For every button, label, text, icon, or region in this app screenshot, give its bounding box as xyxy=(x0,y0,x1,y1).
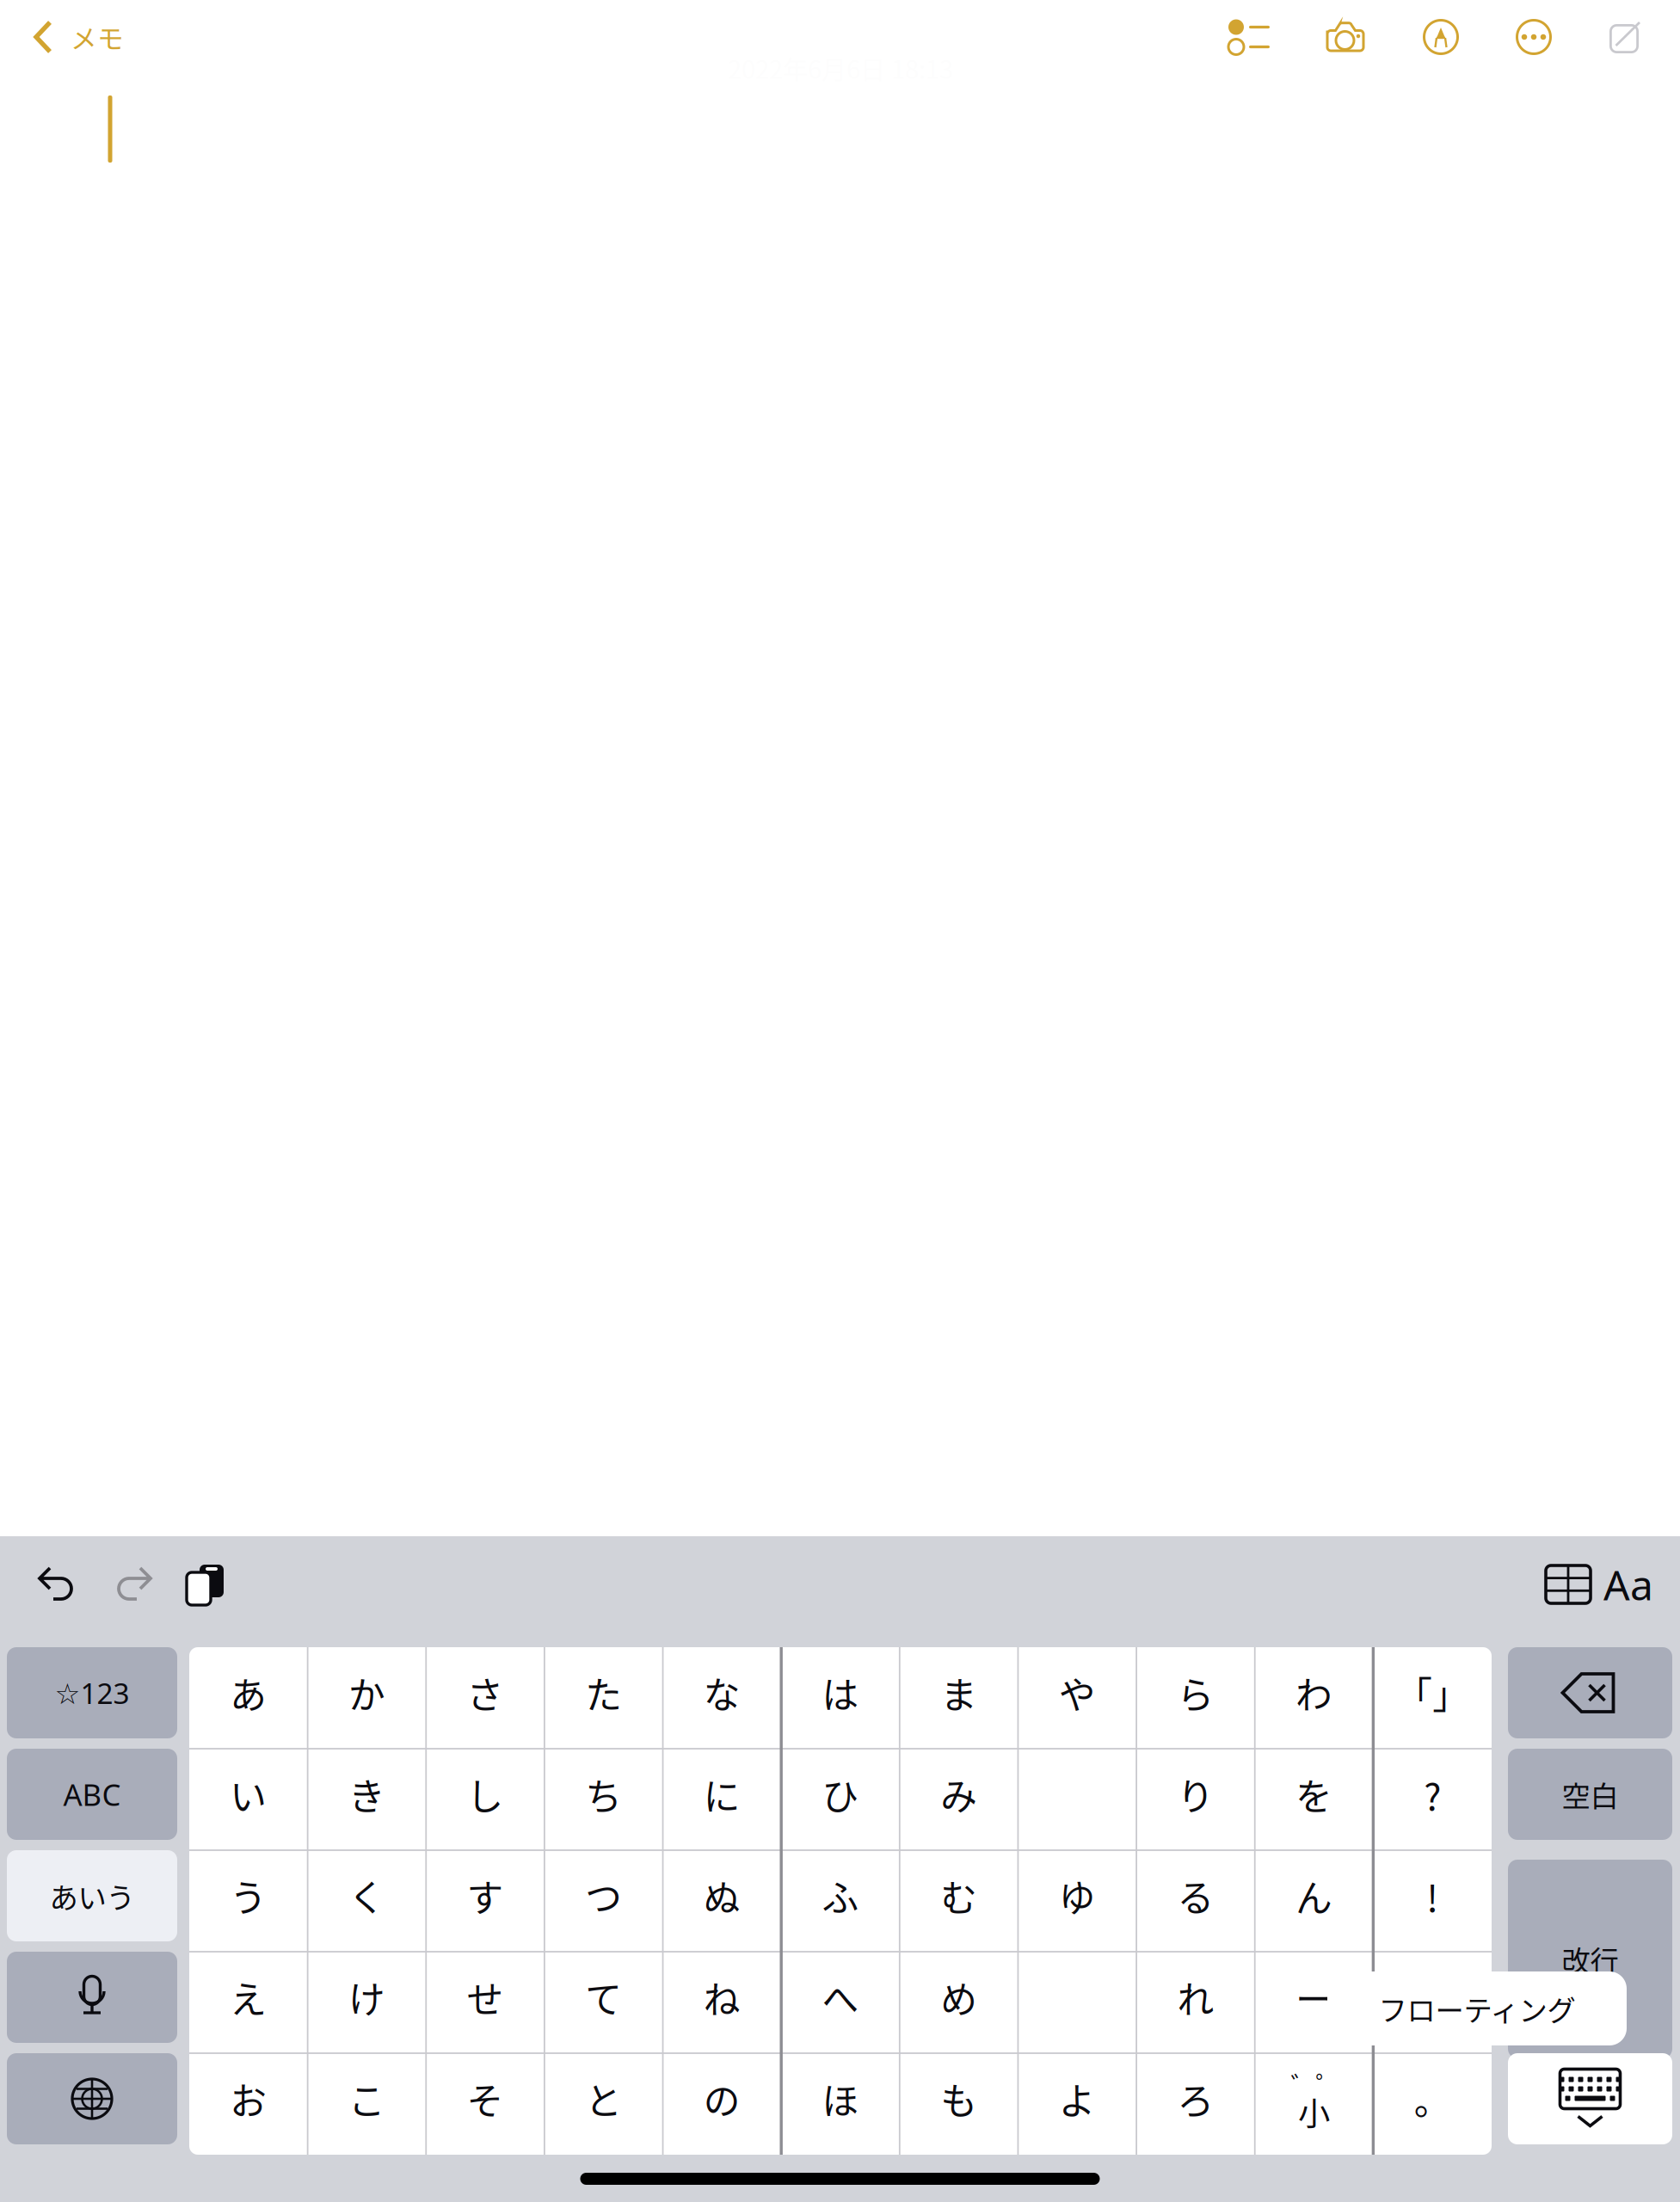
button[interactable]: わ xyxy=(1255,1647,1373,1749)
button[interactable]: ひ xyxy=(781,1749,900,1850)
button[interactable]: Text format xyxy=(1605,1561,1652,1608)
button[interactable]: れ xyxy=(1136,1952,1255,2053)
button[interactable]: め xyxy=(900,1952,1018,2053)
staticText: る xyxy=(1177,1869,1214,1922)
button[interactable]: ☆123 xyxy=(7,1647,177,1738)
button[interactable]: More xyxy=(1514,17,1554,57)
button[interactable]: Camera xyxy=(1323,19,1368,55)
button[interactable]: か xyxy=(308,1647,426,1749)
button[interactable]: 。 xyxy=(1373,2053,1492,2155)
button[interactable] xyxy=(1508,1860,1672,2058)
button[interactable]: の xyxy=(663,2053,781,2155)
button[interactable]: さ xyxy=(426,1647,544,1749)
staticText: Aa xyxy=(1603,1557,1653,1612)
staticText: わ xyxy=(1295,1666,1332,1719)
button[interactable] xyxy=(1018,1749,1136,1850)
button[interactable] xyxy=(7,2053,177,2144)
button[interactable]: え xyxy=(189,1952,308,2053)
button[interactable]: Checklist xyxy=(1228,19,1270,55)
button[interactable] xyxy=(1018,1952,1136,2053)
button[interactable]: こ xyxy=(308,2053,426,2155)
staticText: ゛゜ xyxy=(1291,2066,1341,2102)
staticText: 小 xyxy=(1298,2088,1330,2135)
button[interactable]: き xyxy=(308,1749,426,1850)
staticText: と xyxy=(585,2072,622,2125)
button[interactable]: ! xyxy=(1373,1850,1492,1952)
button[interactable]: し xyxy=(426,1749,544,1850)
staticText: ふ xyxy=(822,1869,859,1922)
button[interactable]: に xyxy=(663,1749,781,1850)
staticText: う xyxy=(230,1869,267,1922)
button[interactable]: ち xyxy=(544,1749,663,1850)
button[interactable]: 「」 xyxy=(1373,1647,1492,1749)
staticText: め xyxy=(940,1971,977,2024)
button[interactable]: を xyxy=(1255,1749,1373,1850)
button[interactable]: も xyxy=(900,2053,1018,2155)
button[interactable]: ー xyxy=(1255,1952,1373,2053)
staticText: そ xyxy=(467,2072,504,2125)
button[interactable]: New note xyxy=(1607,18,1645,56)
staticText: 「」 xyxy=(1395,1666,1469,1719)
staticText: し xyxy=(467,1768,504,1821)
staticText: き xyxy=(348,1768,385,1821)
staticText: に xyxy=(704,1768,741,1821)
button[interactable]: そ xyxy=(426,2053,544,2155)
button[interactable]: ゛゜ xyxy=(1255,2053,1373,2155)
button[interactable]: ゆ xyxy=(1018,1850,1136,1952)
button[interactable]: ろ xyxy=(1136,2053,1255,2155)
button[interactable]: Undo xyxy=(34,1564,81,1605)
button[interactable]: へ xyxy=(781,1952,900,2053)
button[interactable]: ぬ xyxy=(663,1850,781,1952)
staticText: せ xyxy=(467,1971,504,2024)
button[interactable]: り xyxy=(1136,1749,1255,1850)
button[interactable]: Paste xyxy=(184,1563,225,1606)
button[interactable]: Delete xyxy=(1508,1647,1672,1738)
staticText: く xyxy=(348,1869,385,1922)
button[interactable]: ABC xyxy=(7,1749,177,1840)
staticText: ね xyxy=(704,1971,741,2024)
button[interactable]: す xyxy=(426,1850,544,1952)
button[interactable]: つ xyxy=(544,1850,663,1952)
button[interactable]: ? xyxy=(1373,1749,1492,1850)
button[interactable]: は xyxy=(781,1647,900,1749)
button[interactable]: あ xyxy=(189,1647,308,1749)
staticText: 改行 xyxy=(1562,1938,1618,1980)
button[interactable]: Markup xyxy=(1421,17,1461,57)
button[interactable]: む xyxy=(900,1850,1018,1952)
staticText: さ xyxy=(467,1666,504,1719)
button[interactable]: お xyxy=(189,2053,308,2155)
staticText: よ xyxy=(1059,2072,1096,2125)
button[interactable]: Redo xyxy=(109,1564,156,1605)
button[interactable]: ま xyxy=(900,1647,1018,1749)
button[interactable]: み xyxy=(900,1749,1018,1850)
button[interactable]: せ xyxy=(426,1952,544,2053)
button[interactable]: あいう xyxy=(7,1850,177,1941)
button[interactable] xyxy=(1508,1749,1672,1840)
staticText: ら xyxy=(1177,1666,1214,1719)
button[interactable]: い xyxy=(189,1749,308,1850)
staticText: ー xyxy=(1295,1971,1332,2024)
button[interactable]: ね xyxy=(663,1952,781,2053)
button[interactable]: た xyxy=(544,1647,663,1749)
button[interactable]: ら xyxy=(1136,1647,1255,1749)
button[interactable]: と xyxy=(544,2053,663,2155)
button[interactable] xyxy=(7,1952,177,2043)
button[interactable]: よ xyxy=(1018,2053,1136,2155)
staticText: て xyxy=(585,1971,622,2024)
staticText: ? xyxy=(1424,1768,1441,1821)
button[interactable]: る xyxy=(1136,1850,1255,1952)
button[interactable]: Hide keyboard xyxy=(1508,2053,1672,2144)
button[interactable]: け xyxy=(308,1952,426,2053)
button[interactable]: 、 xyxy=(1373,1952,1492,2053)
button[interactable]: て xyxy=(544,1952,663,2053)
button[interactable]: ほ xyxy=(781,2053,900,2155)
button[interactable]: メモ xyxy=(0,0,141,74)
button[interactable]: Table xyxy=(1545,1563,1591,1606)
button[interactable]: や xyxy=(1018,1647,1136,1749)
button[interactable]: ん xyxy=(1255,1850,1373,1952)
button[interactable]: ふ xyxy=(781,1850,900,1952)
button[interactable]: う xyxy=(189,1850,308,1952)
button[interactable]: く xyxy=(308,1850,426,1952)
button[interactable]: な xyxy=(663,1647,781,1749)
staticText: お xyxy=(230,2072,267,2125)
